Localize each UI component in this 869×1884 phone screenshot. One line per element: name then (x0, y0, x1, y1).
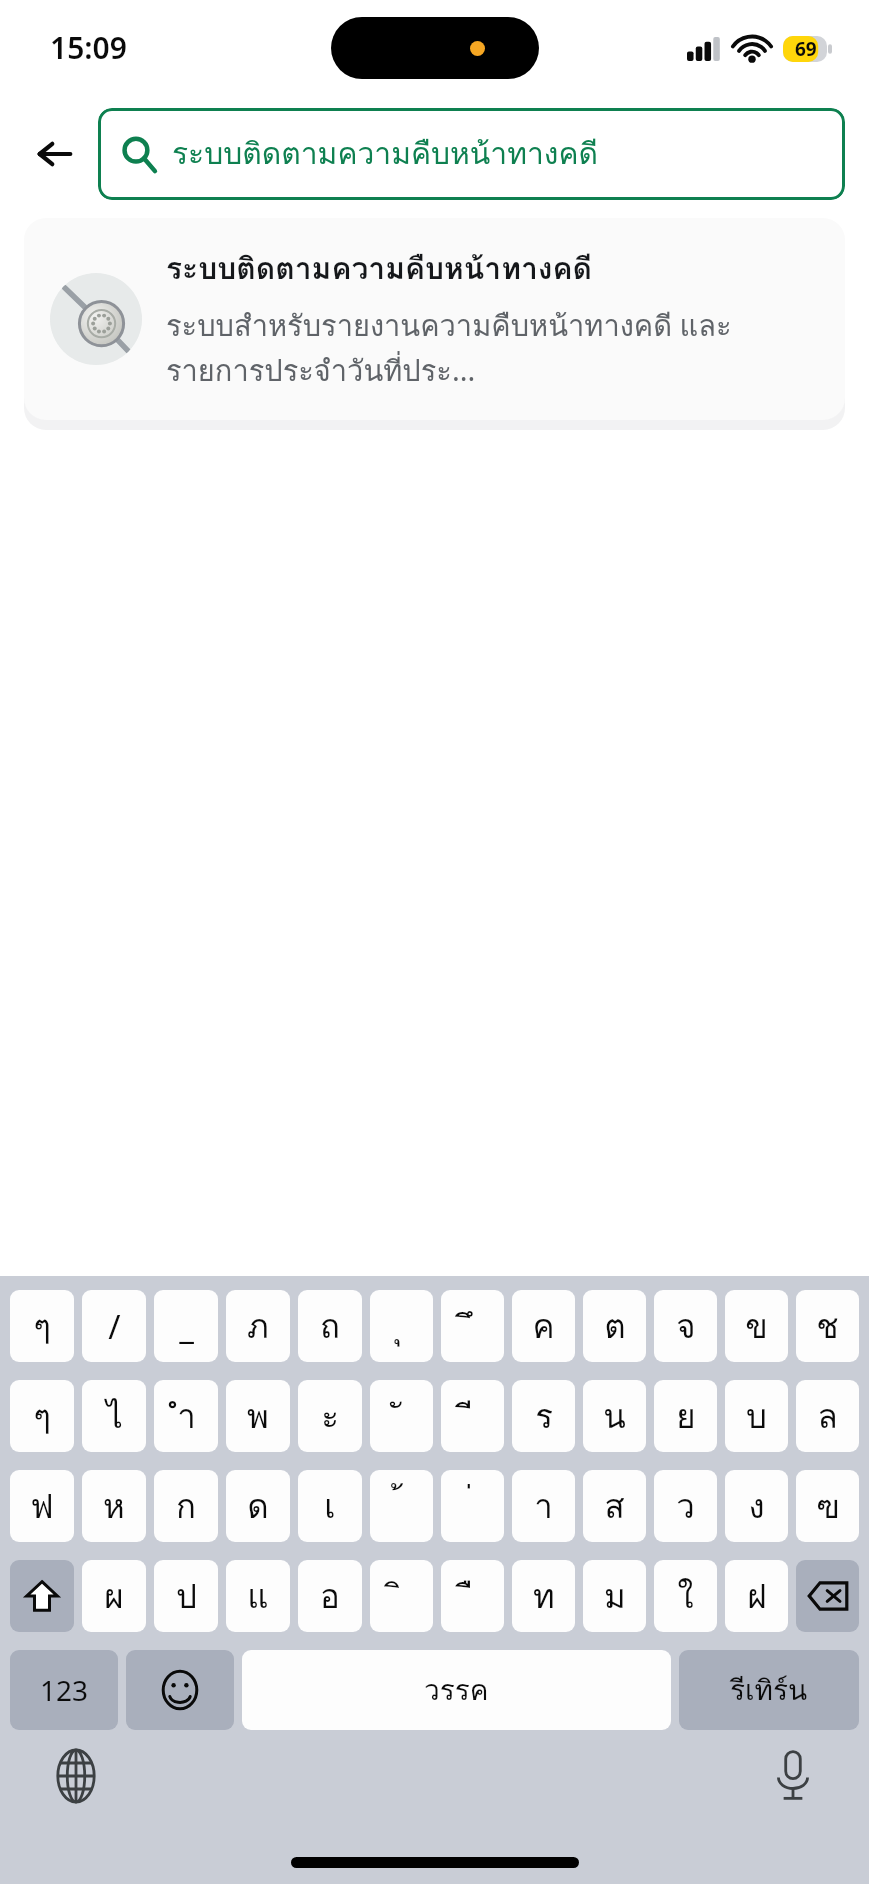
button[interactable]: Change keyboard language (40, 1740, 112, 1812)
staticText: ท (533, 1570, 555, 1622)
staticText: น (603, 1390, 626, 1442)
button[interactable]: น (583, 1380, 646, 1452)
staticText: พ (247, 1390, 269, 1442)
staticText: ล (817, 1390, 838, 1442)
staticText: / (108, 1304, 121, 1349)
button[interactable]: า (512, 1470, 575, 1542)
staticText: ว (676, 1480, 695, 1532)
button[interactable]: ุ (370, 1290, 433, 1362)
button[interactable]: ิ (370, 1560, 433, 1632)
button[interactable]: ห (82, 1470, 146, 1542)
staticText: ผ (104, 1570, 124, 1622)
button[interactable]: Backspace (796, 1560, 859, 1632)
staticText: ห (103, 1480, 125, 1532)
button[interactable]: ๆ (10, 1380, 74, 1452)
button[interactable]: ข (725, 1290, 788, 1362)
button[interactable]: เ (298, 1470, 362, 1542)
staticText: ก (176, 1480, 196, 1532)
staticText: อ (320, 1570, 340, 1622)
button[interactable]: ล (796, 1380, 859, 1452)
button[interactable]: ถ (298, 1290, 362, 1362)
button[interactable]: Emoji (126, 1650, 234, 1730)
button[interactable]: 123 (10, 1650, 118, 1730)
button[interactable]: รีเทิร์น (679, 1650, 859, 1730)
staticText: ระบบสำหรับรายงานความคืบหน้าทางคดี และราย… (166, 303, 823, 394)
button[interactable]: ำ (154, 1380, 218, 1452)
staticText: 15:09 (50, 27, 127, 68)
staticText: จ (676, 1300, 696, 1352)
staticText: รีเทิร์น (730, 1668, 808, 1713)
staticText: ส (604, 1480, 625, 1532)
button[interactable]: ไ (82, 1380, 146, 1452)
button[interactable]: ้ (370, 1470, 433, 1542)
staticText: ๆ (33, 1300, 51, 1352)
button[interactable]: ใ (654, 1560, 717, 1632)
staticText: ถ (320, 1300, 340, 1352)
staticText: 69 (795, 36, 817, 62)
staticText: ต (604, 1300, 626, 1352)
button[interactable]: ื (441, 1560, 504, 1632)
staticText: ไ (106, 1390, 123, 1442)
staticText: ระบบติดตามความคืบหน้าทางคดี (172, 130, 598, 178)
staticText: ๆ (33, 1390, 51, 1442)
staticText: ค (532, 1300, 555, 1352)
staticText: ะ (321, 1390, 339, 1442)
button[interactable]: ว (654, 1470, 717, 1542)
staticText: ย (676, 1390, 696, 1442)
button[interactable]: พ (226, 1380, 290, 1452)
button[interactable]: ก (154, 1470, 218, 1542)
button[interactable]: ระบบติดตามความคืบหน้าทางคดี (24, 218, 845, 420)
staticText: ข (745, 1300, 768, 1352)
staticText: 123 (40, 1671, 89, 1709)
button[interactable]: ฃ (796, 1470, 859, 1542)
button[interactable]: Shift (10, 1560, 74, 1632)
button[interactable]: _ (154, 1290, 218, 1362)
button[interactable]: ี (441, 1380, 504, 1452)
button[interactable]: ค (512, 1290, 575, 1362)
button[interactable]: ะ (298, 1380, 362, 1452)
staticText: ใ (677, 1570, 694, 1622)
staticText: ำ (177, 1390, 196, 1442)
staticText: ง (748, 1480, 765, 1532)
button[interactable]: ึ (441, 1290, 504, 1362)
button[interactable]: ด (226, 1470, 290, 1542)
staticText: เ (324, 1480, 336, 1532)
staticText: ป (176, 1570, 197, 1622)
staticText: ม (604, 1570, 626, 1622)
button[interactable]: ช (796, 1290, 859, 1362)
button[interactable]: ภ (226, 1290, 290, 1362)
staticText: ช (816, 1300, 839, 1352)
staticText: แ (247, 1570, 269, 1622)
button[interactable]: Dictation (757, 1740, 829, 1812)
button[interactable]: ระบบติดตามความคืบหน้าทางคดี (98, 108, 845, 200)
staticText: _ (179, 1304, 194, 1349)
button[interactable]: ผ (82, 1560, 146, 1632)
button[interactable]: ฝ (725, 1560, 788, 1632)
button[interactable]: / (82, 1290, 146, 1362)
staticText: ภ (247, 1300, 269, 1352)
button[interactable]: ต (583, 1290, 646, 1362)
button[interactable]: แ (226, 1560, 290, 1632)
button[interactable]: วรรค (242, 1650, 671, 1730)
button[interactable]: ม (583, 1560, 646, 1632)
button[interactable]: Back (24, 123, 86, 185)
button[interactable]: ร (512, 1380, 575, 1452)
button[interactable]: ป (154, 1560, 218, 1632)
button[interactable]: ง (725, 1470, 788, 1542)
staticText: า (534, 1480, 553, 1532)
staticText: ฝ (747, 1570, 767, 1622)
button[interactable]: ย (654, 1380, 717, 1452)
button[interactable]: ท (512, 1560, 575, 1632)
button[interactable]: จ (654, 1290, 717, 1362)
button[interactable]: ฟ (10, 1470, 74, 1542)
button[interactable]: บ (725, 1380, 788, 1452)
button[interactable]: ๆ (10, 1290, 74, 1362)
staticText: วรรค (424, 1668, 489, 1713)
staticText: ฟ (30, 1480, 54, 1532)
button[interactable]: ั (370, 1380, 433, 1452)
staticText: บ (746, 1390, 767, 1442)
button[interactable]: ส (583, 1470, 646, 1542)
button[interactable]: ่ (441, 1470, 504, 1542)
staticText: ร (535, 1390, 553, 1442)
button[interactable]: อ (298, 1560, 362, 1632)
